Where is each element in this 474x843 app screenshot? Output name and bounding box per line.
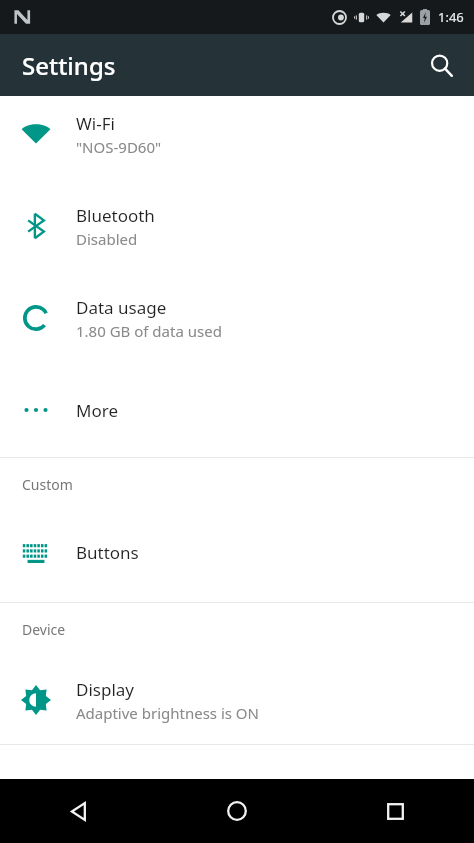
button[interactable]: Data usage xyxy=(0,272,474,364)
staticText: More xyxy=(76,399,118,422)
button[interactable]: Bluetooth xyxy=(0,180,474,272)
button[interactable]: Display xyxy=(0,652,474,744)
staticText: Settings xyxy=(22,49,116,82)
button[interactable]: Buttons xyxy=(0,507,474,602)
staticText: Wi-Fi xyxy=(76,112,115,135)
button[interactable]: More xyxy=(0,364,474,457)
button[interactable]: Home xyxy=(158,779,316,843)
staticText: Display xyxy=(76,678,134,701)
staticText: 1:46 xyxy=(438,8,464,26)
staticText: Buttons xyxy=(76,541,139,564)
button[interactable]: Recent apps xyxy=(316,779,474,843)
staticText: Custom xyxy=(22,475,73,494)
staticText: Adaptive brightness is ON xyxy=(76,703,259,723)
staticText: Device xyxy=(22,620,66,639)
button[interactable]: Search xyxy=(418,42,464,88)
button[interactable]: Back xyxy=(0,779,158,843)
staticText: Bluetooth xyxy=(76,204,155,227)
staticText: "NOS-9D60" xyxy=(76,137,162,157)
staticText: Disabled xyxy=(76,229,138,249)
staticText: Data usage xyxy=(76,296,167,319)
button[interactable]: Wi-Fi xyxy=(0,96,474,180)
staticText: 1.80 GB of data used xyxy=(76,321,222,341)
